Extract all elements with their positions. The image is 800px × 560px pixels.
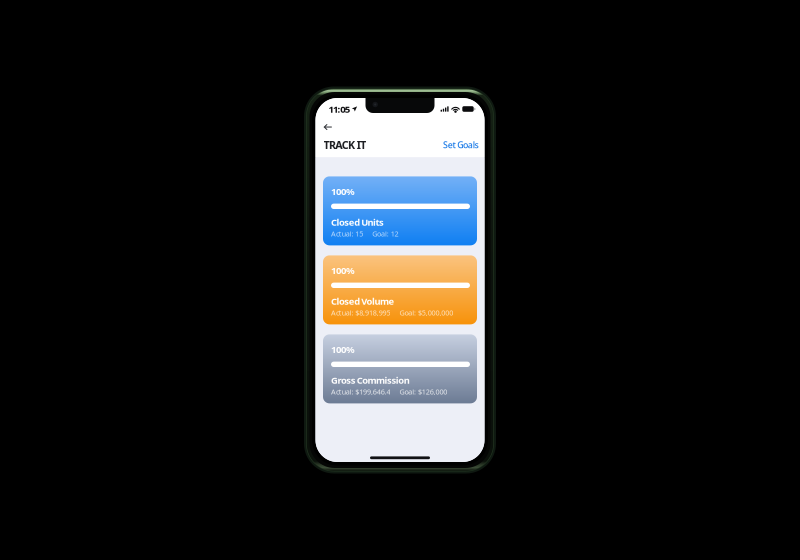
button[interactable]: Back (323, 121, 338, 131)
button[interactable]: 100% (323, 176, 477, 245)
staticText: Goal: 12 (372, 229, 399, 238)
staticText: 11:05 (328, 103, 350, 115)
staticText: 100% (331, 264, 355, 277)
button[interactable]: 100% (323, 334, 477, 403)
staticText: Closed Units (331, 216, 384, 228)
staticText: Actual: $199,646.4 (331, 387, 390, 396)
staticText: Set Goals (443, 139, 478, 151)
staticText: Actual: $8,918,995 (331, 308, 390, 317)
button[interactable]: Set Goals (443, 139, 478, 151)
staticText: Actual: 15 (331, 229, 363, 238)
staticText: 100% (331, 343, 355, 356)
button[interactable]: 100% (323, 255, 477, 324)
staticText: TRACK IT (323, 138, 366, 152)
staticText: 100% (331, 185, 355, 198)
staticText: Goal: $126,000 (399, 387, 447, 396)
staticText: Gross Commission (331, 374, 410, 386)
staticText: Closed Volume (331, 295, 394, 307)
staticText: Goal: $5,000,000 (399, 308, 453, 317)
